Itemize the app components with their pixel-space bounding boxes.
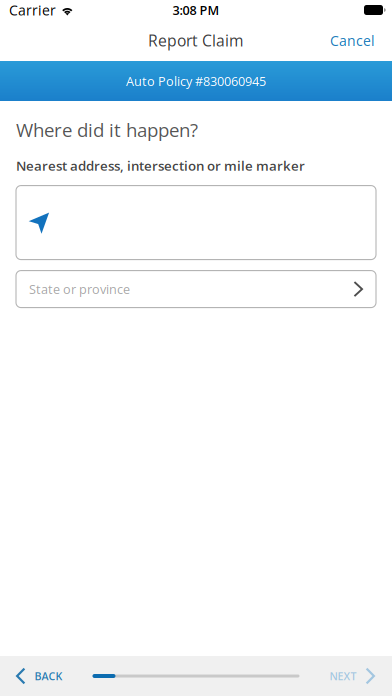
button[interactable]: Cancel xyxy=(316,20,392,61)
staticText: BACK xyxy=(34,669,62,683)
staticText: Carrier xyxy=(9,0,56,20)
staticText: State or province xyxy=(29,280,130,298)
button[interactable]: Auto Policy #830060945 xyxy=(0,61,392,101)
staticText: NEXT xyxy=(329,669,356,683)
staticText: Auto Policy #830060945 xyxy=(126,72,266,90)
staticText: Report Claim xyxy=(148,30,244,51)
staticText: Where did it happen? xyxy=(16,117,198,142)
button[interactable]: NEXT xyxy=(315,656,392,696)
staticText: Nearest address, intersection or mile ma… xyxy=(16,156,305,175)
staticText: 3:08 PM xyxy=(172,1,219,19)
button[interactable]: State or province xyxy=(16,271,376,308)
button[interactable]: BACK xyxy=(0,656,76,696)
staticText: Cancel xyxy=(330,31,375,50)
button[interactable] xyxy=(16,186,376,260)
